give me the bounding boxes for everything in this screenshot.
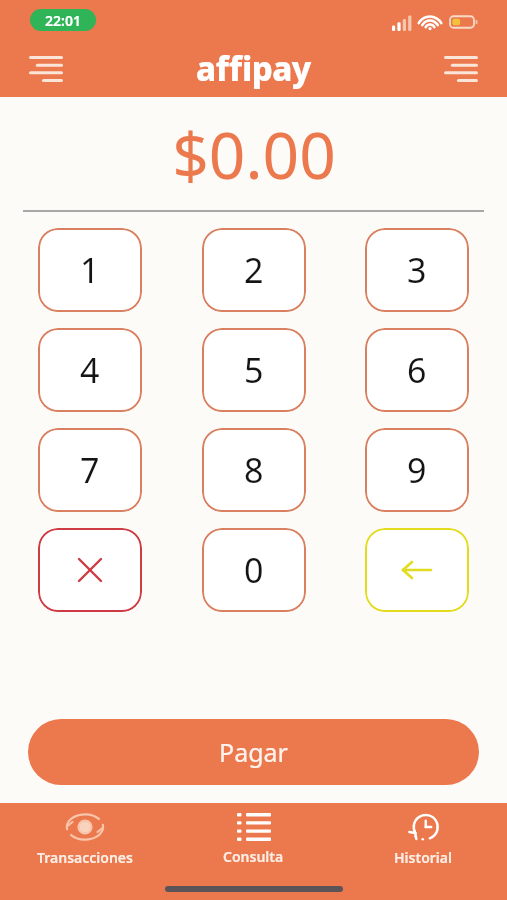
button[interactable]: 6: [365, 328, 469, 412]
staticText: 3: [407, 247, 427, 293]
button[interactable]: 1: [38, 228, 142, 312]
staticText: Historial: [394, 848, 452, 867]
staticText: Pagar: [219, 735, 288, 769]
button[interactable]: 9: [365, 428, 469, 512]
staticText: 6: [407, 347, 427, 393]
staticText: 22:01: [45, 11, 81, 30]
staticText: Transacciones: [37, 848, 133, 867]
staticText: 4: [80, 347, 100, 393]
button[interactable]: 8: [202, 428, 306, 512]
button[interactable]: Consulta: [169, 813, 338, 866]
staticText: 5: [244, 347, 264, 393]
button[interactable]: Pagar: [28, 719, 479, 785]
button[interactable]: Clear: [38, 528, 142, 612]
staticText: affipay: [196, 46, 311, 91]
button[interactable]: Options: [415, 40, 507, 97]
button[interactable]: 5: [202, 328, 306, 412]
button[interactable]: 3: [365, 228, 469, 312]
staticText: $0.00: [172, 111, 336, 198]
button[interactable]: 4: [38, 328, 142, 412]
staticText: Consulta: [223, 847, 284, 866]
button[interactable]: 2: [202, 228, 306, 312]
button[interactable]: 7: [38, 428, 142, 512]
button[interactable]: Transacciones: [0, 812, 169, 867]
staticText: 8: [244, 447, 264, 493]
button[interactable]: Menu: [0, 40, 92, 97]
button[interactable]: Backspace: [365, 528, 469, 612]
staticText: 7: [80, 447, 100, 493]
button[interactable]: Historial: [338, 812, 507, 867]
staticText: 0: [244, 547, 264, 593]
staticText: 1: [80, 247, 100, 293]
staticText: 9: [407, 447, 427, 493]
staticText: 2: [244, 247, 264, 293]
button[interactable]: 0: [202, 528, 306, 612]
